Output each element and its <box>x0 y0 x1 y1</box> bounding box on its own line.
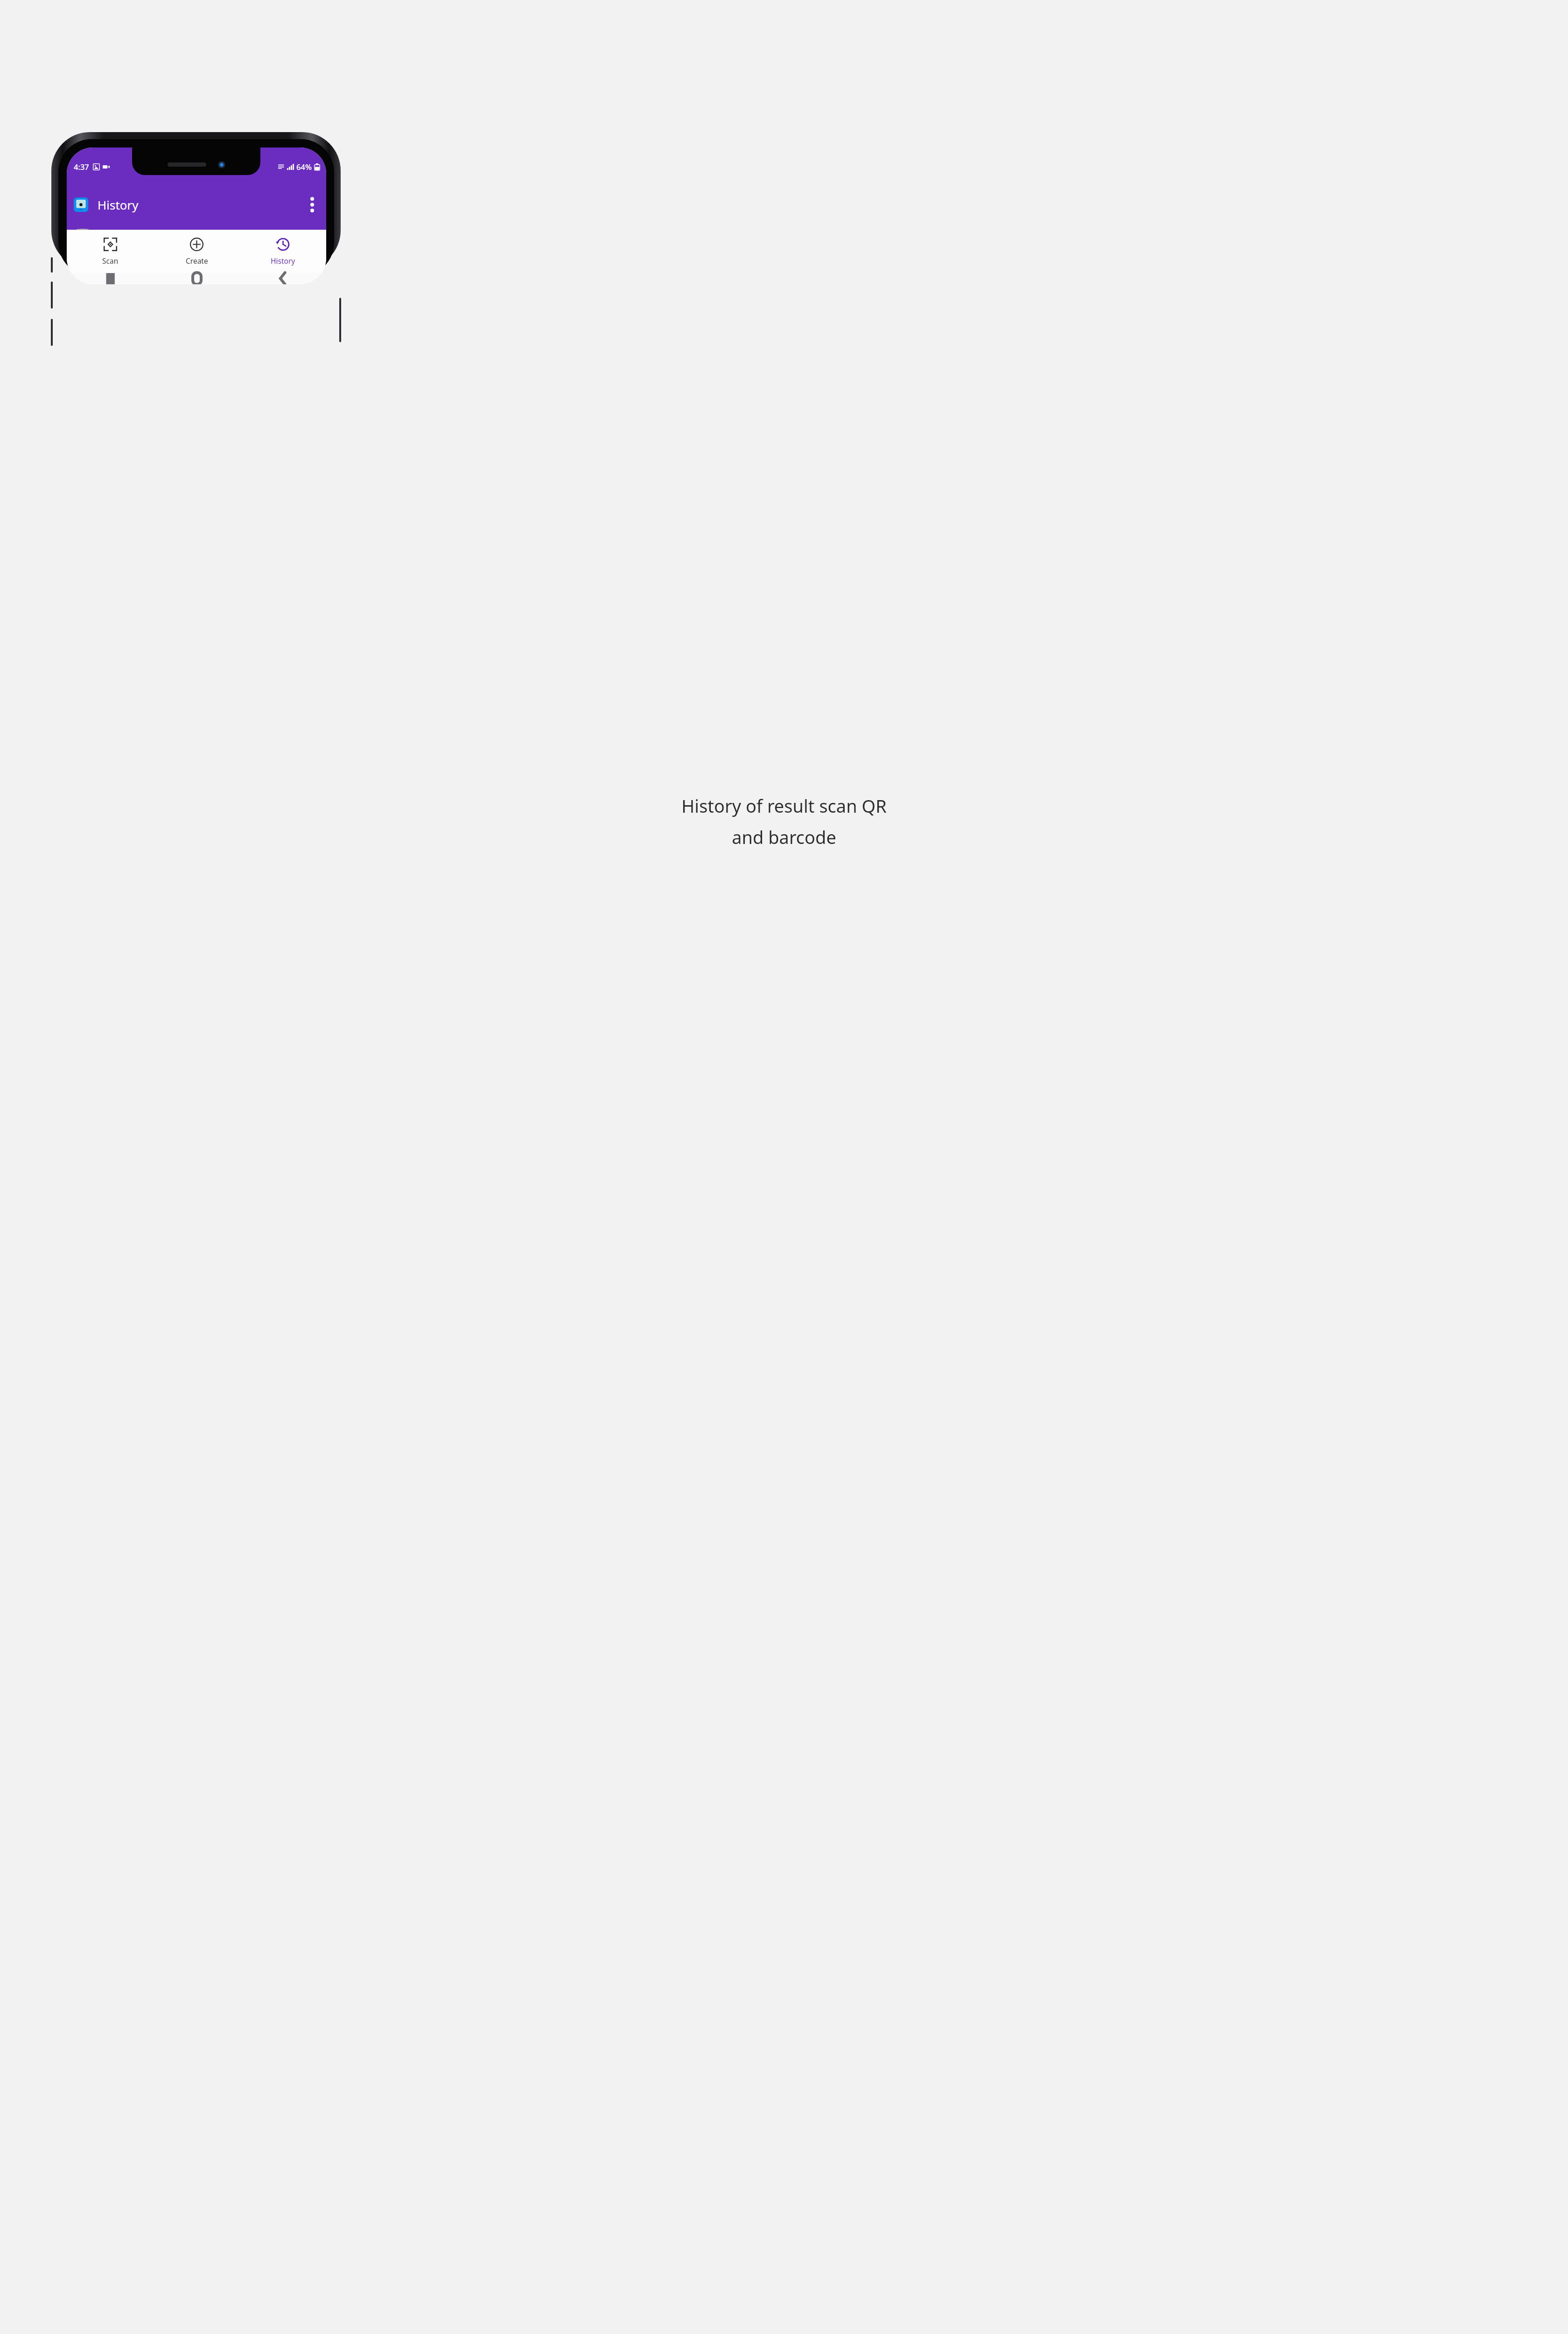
staticText: History of result scan QR <box>681 794 887 818</box>
button[interactable]: Create <box>154 230 240 273</box>
button[interactable]: History <box>240 230 326 273</box>
staticText: Create <box>186 256 208 266</box>
staticText: Scan <box>102 256 119 266</box>
staticText: 64% <box>296 162 312 172</box>
staticText: History <box>98 197 139 213</box>
staticText: and barcode <box>732 825 836 849</box>
button[interactable]: Back <box>240 273 326 284</box>
button[interactable]: More options <box>302 195 322 215</box>
button[interactable]: Recents <box>67 273 154 284</box>
staticText: 4:37 <box>74 162 89 172</box>
button[interactable]: Scan <box>67 230 154 273</box>
button[interactable]: Home <box>154 273 240 284</box>
staticText: History <box>271 256 295 266</box>
